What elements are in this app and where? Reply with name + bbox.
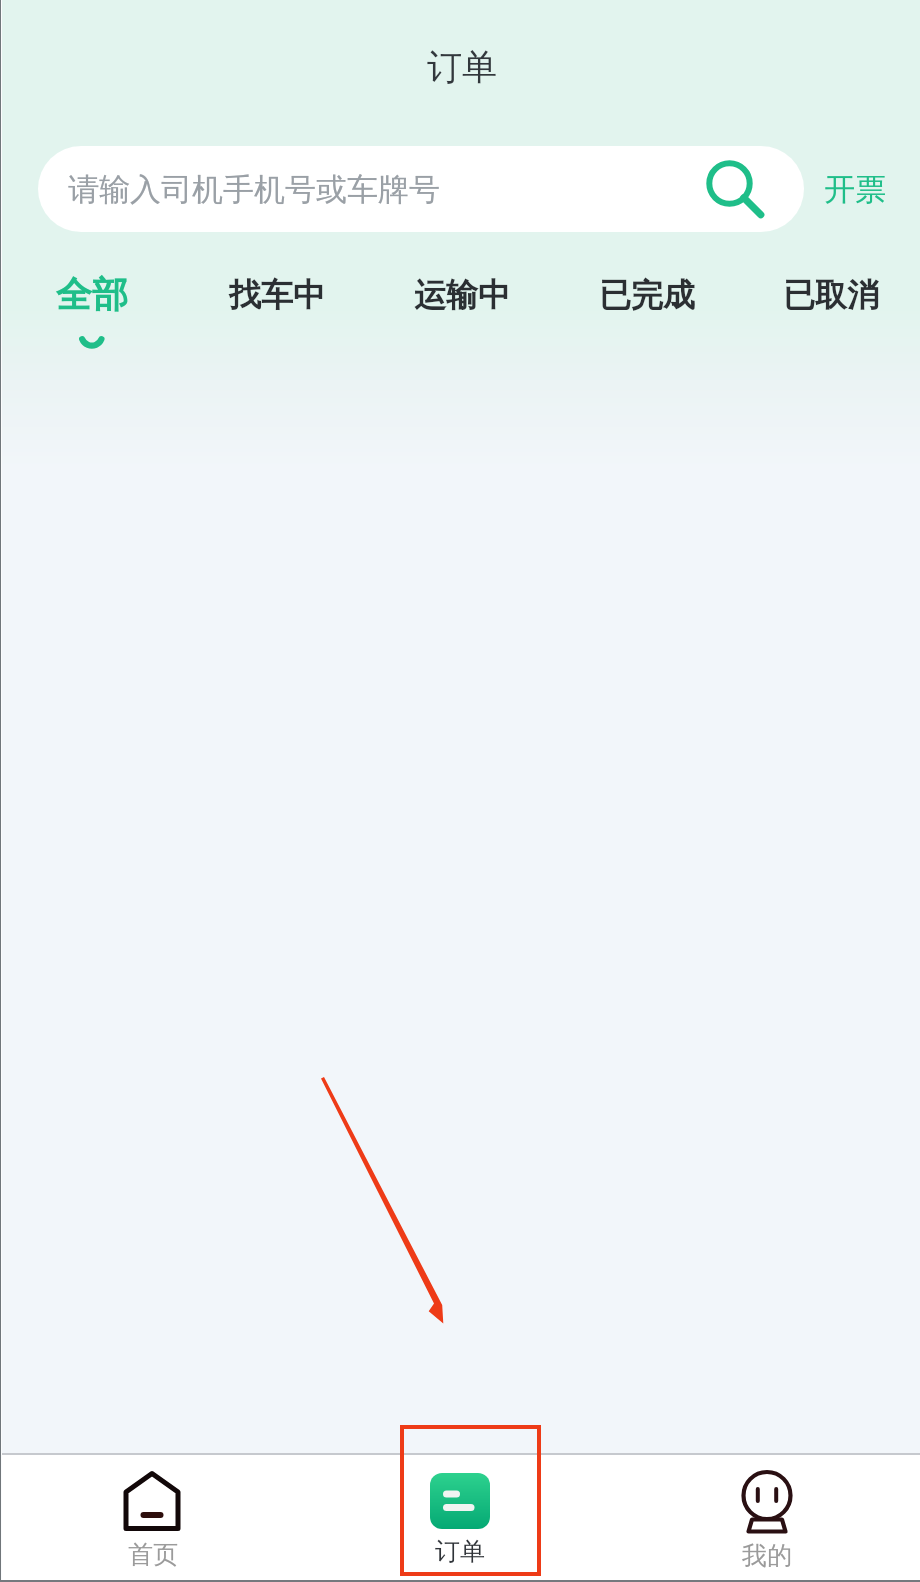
staticText: 运输中 bbox=[414, 275, 510, 315]
button[interactable]: 运输中 bbox=[392, 275, 532, 375]
button[interactable]: 找车中 bbox=[207, 275, 347, 375]
staticText: 请输入司机手机号或车牌号 bbox=[68, 170, 440, 209]
button[interactable]: 已完成 bbox=[577, 275, 717, 375]
staticText: 订单 bbox=[427, 45, 497, 89]
button[interactable]: 首页 bbox=[0, 1458, 306, 1582]
button[interactable]: 请输入司机手机号或车牌号 bbox=[38, 146, 804, 232]
staticText: 已完成 bbox=[599, 275, 695, 315]
staticText: 我的 bbox=[742, 1540, 792, 1571]
staticText: 首页 bbox=[128, 1539, 178, 1570]
other: Search bbox=[694, 153, 767, 226]
staticText: 找车中 bbox=[229, 275, 325, 315]
staticText: 订单 bbox=[435, 1536, 485, 1567]
button[interactable]: 开票 bbox=[824, 146, 886, 232]
staticText: 全部 bbox=[56, 272, 128, 317]
button[interactable]: 全部 bbox=[37, 275, 147, 375]
button[interactable]: 我的 bbox=[613, 1458, 920, 1582]
staticText: 已取消 bbox=[783, 275, 879, 315]
button[interactable]: 已取消 bbox=[761, 275, 901, 375]
button[interactable]: 订单 bbox=[306, 1458, 613, 1582]
staticText: 开票 bbox=[824, 170, 886, 209]
